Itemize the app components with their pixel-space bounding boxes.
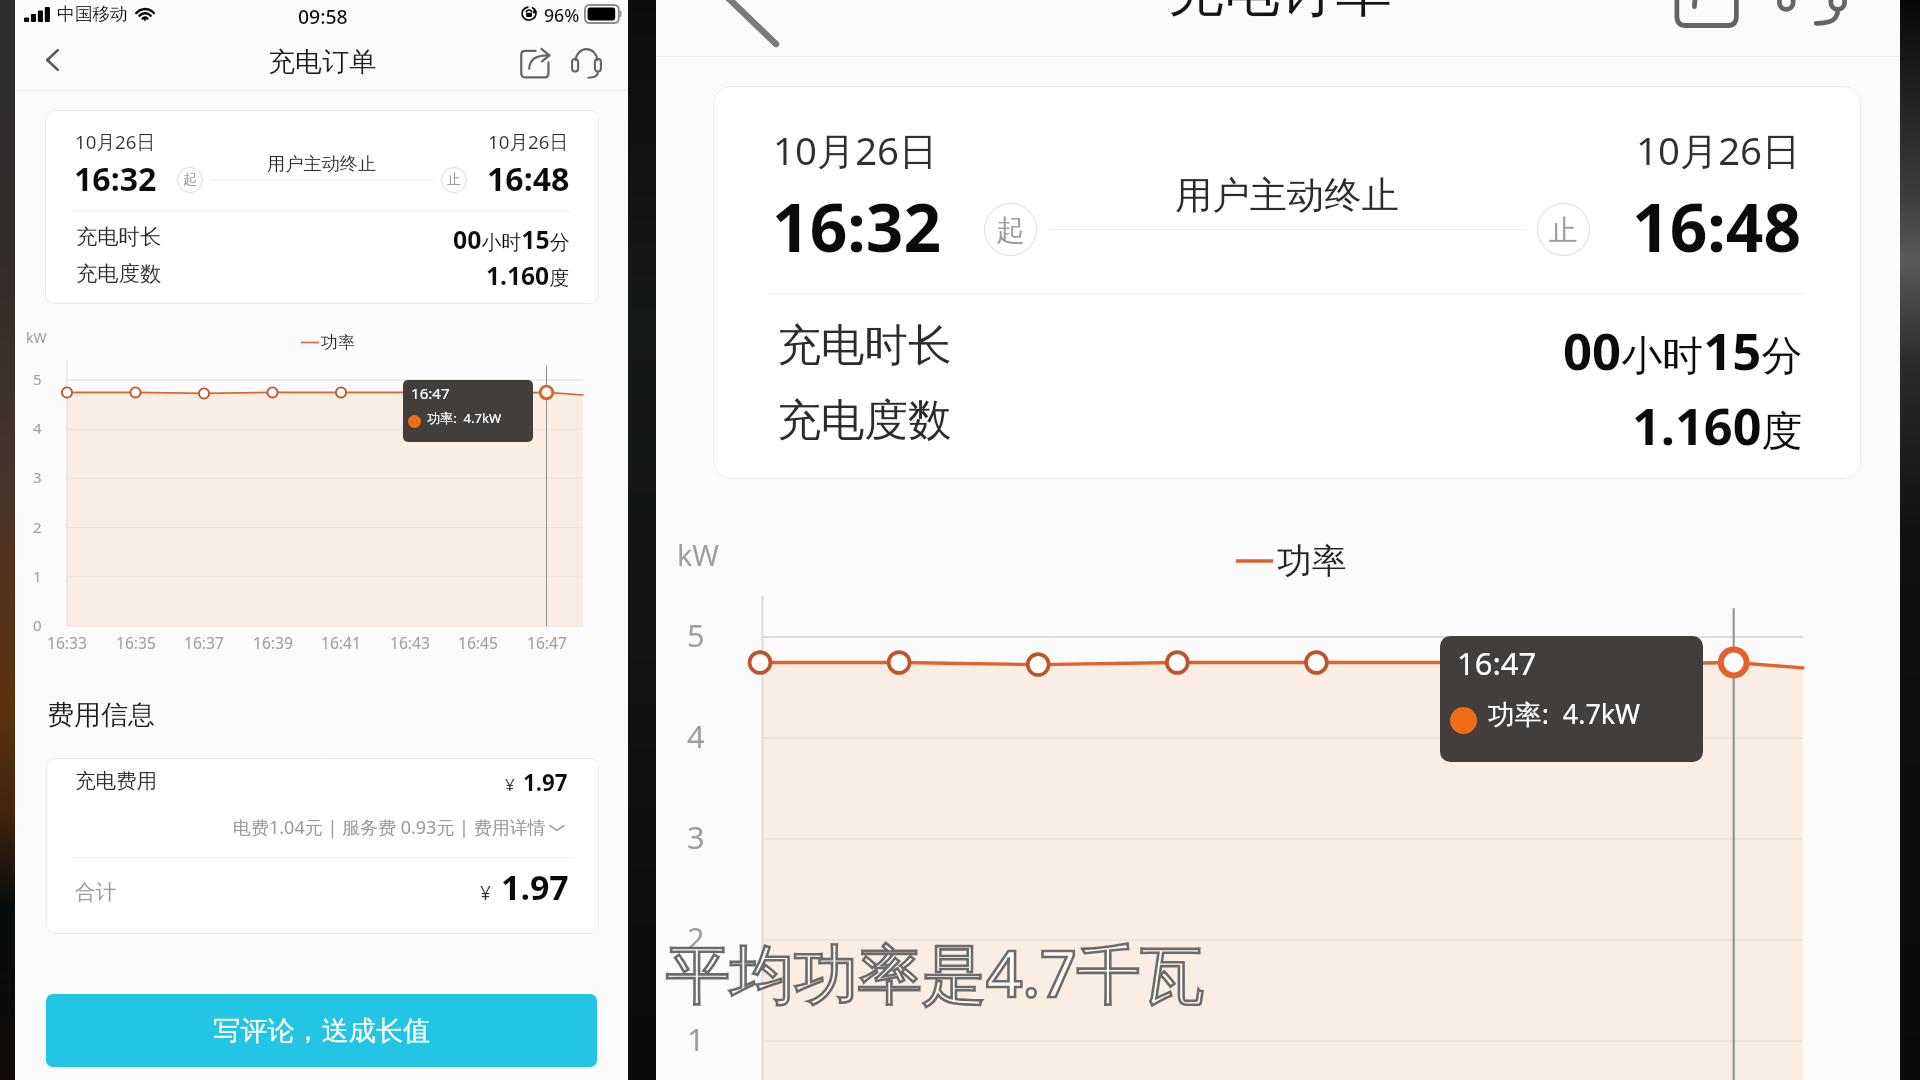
staticText: 功率: 4.7kW xyxy=(1488,695,1641,732)
staticText: 平均功率是4.7千瓦 xyxy=(666,929,1205,1016)
button[interactable]: 10月26日 xyxy=(45,110,599,304)
staticText: 16:48 xyxy=(1632,182,1802,272)
staticText: 止 xyxy=(447,171,461,189)
staticText: 3 xyxy=(33,467,42,487)
staticText: 用户主动终止 xyxy=(267,152,377,175)
staticText: 1.160度 xyxy=(486,259,570,293)
staticText: 16:47 xyxy=(1457,642,1537,684)
staticText: ¥ xyxy=(505,773,515,796)
staticText: 1 xyxy=(687,1018,705,1060)
staticText: 4 xyxy=(33,418,42,438)
staticText: 4 xyxy=(687,715,705,757)
staticText: 16:43 xyxy=(390,632,430,653)
staticText: 16:47 xyxy=(411,383,450,404)
staticText: ¥ xyxy=(480,880,491,906)
staticText: 1.97 xyxy=(523,767,568,797)
staticText: 充电时长 xyxy=(777,318,952,373)
button[interactable]: Share xyxy=(1672,0,1742,29)
staticText: 5 xyxy=(33,369,42,389)
button[interactable]: Customer service xyxy=(563,39,610,86)
staticText: 96% xyxy=(544,3,580,27)
staticText: 09:58 xyxy=(298,3,348,29)
staticText: 2 xyxy=(687,917,705,959)
staticText: 止 xyxy=(1549,212,1578,248)
staticText: 10月26日 xyxy=(773,124,938,176)
staticText: 费用信息 xyxy=(47,698,155,732)
staticText: 10月26日 xyxy=(75,129,156,155)
staticText: 中国移动 xyxy=(57,3,128,25)
staticText: 10月26日 xyxy=(1636,124,1801,176)
staticText: 平均功率是4.7千瓦 xyxy=(666,929,1205,1016)
staticText: 16:48 xyxy=(487,157,570,201)
staticText: 功率: 4.7kW xyxy=(427,409,502,427)
button[interactable]: 写评论，送成长值 xyxy=(46,994,597,1067)
staticText: 16:45 xyxy=(458,632,498,653)
staticText: 1.160度 xyxy=(1632,391,1803,460)
staticText: 16:35 xyxy=(116,632,156,653)
button[interactable]: Back xyxy=(702,0,786,48)
staticText: 功率 xyxy=(321,332,355,353)
staticText: 00小时15分 xyxy=(453,222,570,256)
staticText: 功率 xyxy=(1277,539,1347,583)
staticText: 充电度数 xyxy=(777,393,952,448)
staticText: kW xyxy=(26,328,47,347)
staticText: 16:47 xyxy=(527,632,567,653)
staticText: 起 xyxy=(996,212,1025,248)
staticText: 电费1.04元 | 服务费 0.93元 | 费用详情 xyxy=(233,815,546,840)
staticText: 写评论，送成长值 xyxy=(213,1014,431,1048)
staticText: 充电订单 xyxy=(268,45,376,79)
staticText: 充电费用 xyxy=(75,768,158,794)
staticText: 1.97 xyxy=(501,864,569,910)
staticText: 充电订单 xyxy=(1168,0,1392,27)
button[interactable]: Customer service xyxy=(1777,0,1847,24)
staticText: 00小时15分 xyxy=(1563,316,1803,385)
staticText: 用户主动终止 xyxy=(1175,172,1399,219)
staticText: 16:37 xyxy=(184,632,224,653)
staticText: 16:39 xyxy=(253,632,293,653)
staticText: 16:41 xyxy=(321,632,361,653)
button[interactable]: Back xyxy=(23,30,83,90)
staticText: 充电时长 xyxy=(76,223,162,250)
staticText: 10月26日 xyxy=(488,129,569,155)
staticText: 起 xyxy=(183,171,197,189)
staticText: 合计 xyxy=(75,879,117,905)
staticText: 16:33 xyxy=(47,632,87,653)
staticText: 2 xyxy=(33,517,42,537)
staticText: 0 xyxy=(33,615,42,635)
button[interactable]: 10月26日 xyxy=(713,86,1861,479)
staticText: 3 xyxy=(687,816,705,858)
staticText: 16:32 xyxy=(74,157,157,201)
staticText: kW xyxy=(677,535,719,574)
staticText: 1 xyxy=(33,566,42,586)
button[interactable]: Share xyxy=(511,39,558,86)
staticText: 16:32 xyxy=(772,182,942,272)
staticText: 充电度数 xyxy=(76,260,162,287)
staticText: 5 xyxy=(687,614,705,656)
